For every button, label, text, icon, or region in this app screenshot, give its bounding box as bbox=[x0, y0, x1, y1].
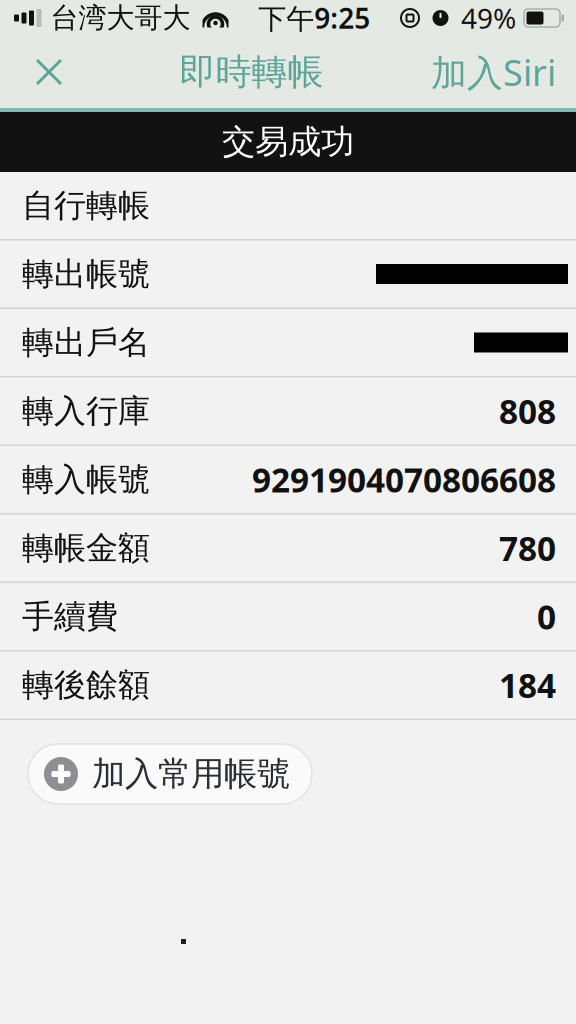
staticText: 9291904070806608 bbox=[252, 457, 556, 502]
staticText: 49% bbox=[461, 0, 516, 37]
staticText: 交易成功 bbox=[222, 121, 354, 162]
staticText: 轉帳金額 bbox=[22, 528, 150, 568]
staticText: 即時轉帳 bbox=[179, 50, 323, 94]
staticText: 轉出帳號 bbox=[22, 254, 150, 294]
staticText: 轉後餘額 bbox=[22, 665, 150, 705]
staticText: 加入Siri bbox=[431, 48, 556, 96]
staticText: 加入常用帳號 bbox=[92, 753, 290, 794]
staticText: 台湾大哥大 bbox=[50, 1, 190, 35]
staticText: 轉入行庫 bbox=[22, 391, 150, 431]
staticText: 下午9:25 bbox=[258, 0, 370, 37]
button[interactable]: 關閉 bbox=[18, 41, 80, 103]
button[interactable]: 加入常用帳號 bbox=[28, 744, 312, 804]
staticText: 184 bbox=[499, 663, 556, 707]
staticText: 0 bbox=[537, 594, 556, 639]
staticText: 轉出戶名 bbox=[22, 323, 150, 362]
staticText: 808 bbox=[499, 389, 556, 433]
staticText: 自行轉帳 bbox=[22, 186, 150, 225]
staticText: 手續費 bbox=[22, 597, 118, 636]
button[interactable]: 加入Siri bbox=[423, 41, 564, 103]
staticText: 780 bbox=[499, 526, 556, 570]
staticText: 轉入帳號 bbox=[22, 460, 150, 499]
